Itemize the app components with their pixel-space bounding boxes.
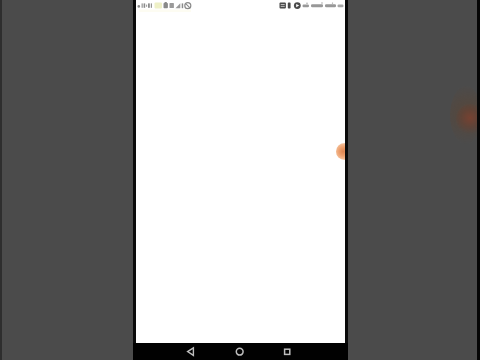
- button[interactable]: [228, 343, 252, 360]
- button[interactable]: [275, 343, 299, 360]
- button[interactable]: [178, 343, 202, 360]
- button[interactable]: [336, 143, 345, 160]
